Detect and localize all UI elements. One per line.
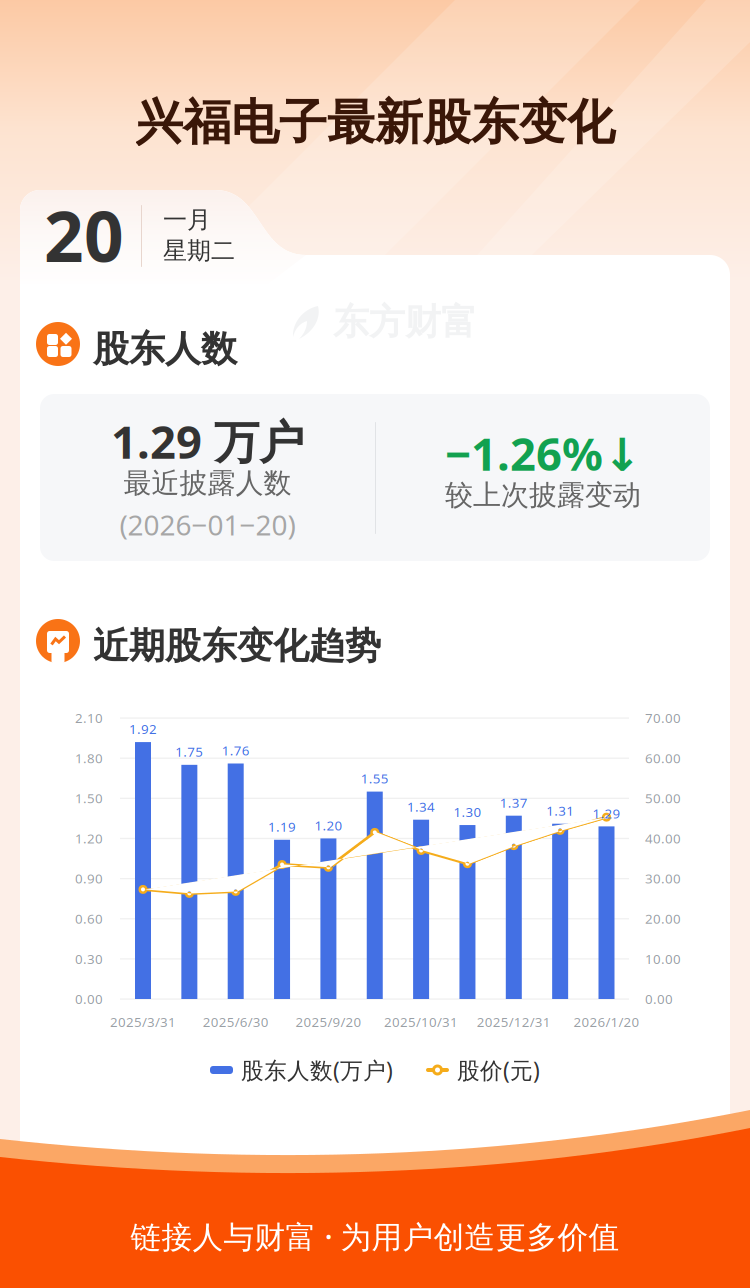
staticText: 1.80: [75, 749, 103, 767]
staticText: 70.00: [645, 709, 681, 727]
staticText: 30.00: [645, 870, 681, 887]
staticText: 股东人数(万户): [241, 1055, 393, 1085]
staticText: 2025/10/31: [384, 1013, 458, 1031]
staticText: 1.75: [175, 743, 203, 760]
staticText: 0.30: [75, 950, 103, 968]
staticText: (2026−01−20): [119, 506, 295, 543]
staticText: 60.00: [645, 749, 681, 767]
staticText: 股东人数: [93, 327, 237, 371]
staticText: 50.00: [645, 789, 681, 807]
staticText: 20.00: [645, 910, 681, 927]
staticText: 2025/9/20: [295, 1013, 361, 1031]
staticText: 0.90: [75, 870, 103, 887]
staticText: 2025/6/30: [203, 1013, 269, 1031]
staticText: 兴福电子最新股东变化: [135, 93, 615, 152]
staticText: −1.26%↓: [445, 423, 641, 483]
staticText: 20: [44, 189, 124, 281]
staticText: 2025/3/31: [110, 1013, 176, 1031]
staticText: 1.37: [500, 794, 528, 811]
staticText: 1.55: [361, 770, 389, 787]
staticText: 东方财富: [333, 300, 477, 344]
staticText: 近期股东变化趋势: [93, 624, 381, 668]
staticText: 最近披露人数: [123, 466, 291, 500]
staticText: 2.10: [75, 709, 103, 727]
staticText: 1.31: [546, 802, 574, 819]
staticText: 一月: [163, 205, 211, 234]
staticText: 1.76: [222, 741, 250, 759]
staticText: 1.20: [75, 829, 103, 847]
staticText: 0.60: [75, 910, 103, 927]
staticText: 股价(元): [457, 1055, 540, 1085]
staticText: 星期二: [163, 236, 235, 265]
staticText: 1.29 万户: [111, 411, 304, 471]
staticText: 1.34: [407, 798, 435, 815]
staticText: 1.20: [314, 816, 342, 834]
staticText: 0.00: [75, 990, 103, 1008]
staticText: 1.19: [268, 818, 296, 835]
staticText: 较上次披露变动: [445, 478, 641, 512]
staticText: 10.00: [645, 950, 681, 968]
staticText: 2026/1/20: [573, 1013, 639, 1031]
staticText: 0.00: [645, 990, 673, 1008]
staticText: 1.92: [129, 720, 157, 738]
staticText: 1.30: [453, 803, 481, 821]
staticText: 1.29: [592, 804, 620, 822]
staticText: 40.00: [645, 829, 681, 847]
staticText: 链接人与财富 · 为用户创造更多价值: [130, 1216, 619, 1257]
staticText: 1.50: [75, 789, 103, 807]
staticText: 2025/12/31: [477, 1013, 551, 1031]
